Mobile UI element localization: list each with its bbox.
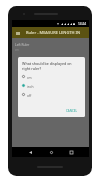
button[interactable]: off [18, 90, 85, 99]
staticText: cm [15, 48, 19, 52]
staticText: Left Ruler [15, 43, 30, 47]
staticText: inch [27, 84, 34, 88]
button[interactable]: cm [18, 72, 85, 81]
staticText: cm [27, 75, 32, 79]
button[interactable]: Menu [14, 29, 22, 37]
button[interactable]: CANCEL [65, 108, 78, 114]
button[interactable]: Recents [66, 147, 76, 157]
staticText: Ruler - MEASURE LENGTH IN [26, 30, 81, 35]
button[interactable]: inch [18, 81, 85, 90]
staticText: off [27, 93, 32, 97]
staticText: What should be displayed on right ruler? [22, 61, 72, 71]
button[interactable]: Back [25, 147, 35, 157]
staticText: CANCEL [66, 109, 77, 113]
staticText: 14:24 [78, 22, 87, 26]
button[interactable]: Home [46, 147, 56, 157]
